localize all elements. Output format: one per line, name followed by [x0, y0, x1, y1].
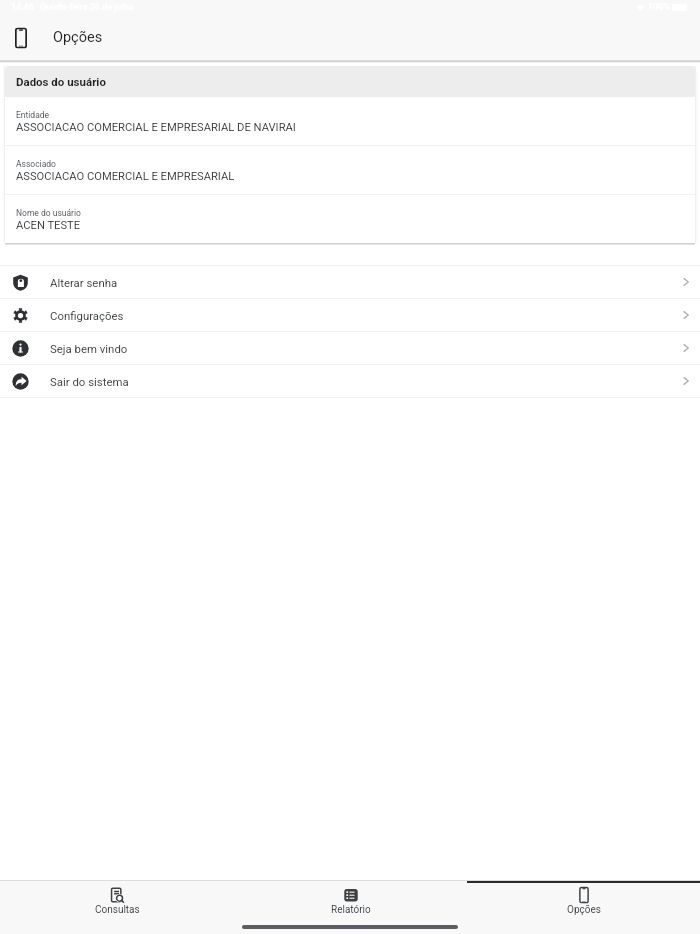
staticText: Configurações: [50, 309, 124, 322]
staticText: Entidade: [16, 110, 50, 120]
staticText: Alterar senha: [50, 276, 118, 289]
staticText: Sair do sistema: [50, 375, 129, 388]
staticText: Consultas: [95, 904, 140, 916]
button[interactable]: Consultas: [0, 881, 234, 919]
staticText: Associado: [16, 159, 56, 169]
button[interactable]: Alterar senha: [0, 266, 700, 298]
staticText: ASSOCIACAO COMERCIAL E EMPRESARIAL: [16, 170, 235, 183]
staticText: Seja bem vindo: [50, 342, 128, 355]
staticText: Relatório: [331, 904, 371, 916]
staticText: Opções: [53, 29, 103, 46]
staticText: Dados do usuário: [16, 75, 106, 88]
staticText: ACEN TESTE: [16, 219, 81, 232]
button[interactable]: Relatório: [234, 881, 467, 919]
button[interactable]: Sair do sistema: [0, 365, 700, 397]
button[interactable]: Opções: [6, 23, 36, 53]
button[interactable]: Opções: [467, 881, 700, 919]
staticText: Nome do usuário: [16, 208, 81, 218]
button[interactable]: Seja bem vindo: [0, 332, 700, 364]
button[interactable]: Configurações: [0, 299, 700, 331]
staticText: ASSOCIACAO COMERCIAL E EMPRESARIAL DE NA…: [16, 121, 296, 134]
staticText: Opções: [567, 904, 601, 916]
